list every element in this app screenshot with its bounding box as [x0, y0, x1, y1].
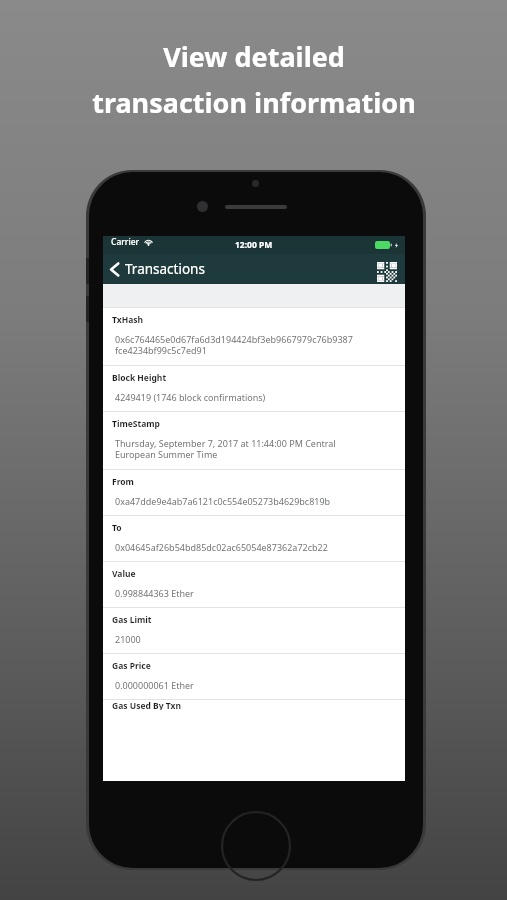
button[interactable]: Gas Price: [103, 653, 405, 699]
staticText: 0x6c764465e0d67fa6d3d194424bf3eb9667979c…: [115, 333, 353, 357]
staticText: Gas Price: [112, 660, 151, 672]
staticText: TxHash: [112, 314, 144, 326]
staticText: 0x04645af26b54bd85dc02ac65054e87362a72cb…: [115, 541, 328, 553]
staticText: Thursday, September 7, 2017 at 11:44:00 …: [115, 437, 336, 461]
staticText: Gas Used By Txn: [112, 700, 181, 710]
button[interactable]: Gas Limit: [103, 607, 405, 653]
staticText: Transactions: [125, 260, 205, 278]
staticText: 0.000000061 Ether: [115, 679, 194, 691]
staticText: Block Height: [112, 372, 167, 384]
button[interactable]: Value: [103, 561, 405, 607]
staticText: 0.998844363 Ether: [115, 587, 194, 599]
staticText: 12:00 PM: [235, 239, 273, 251]
staticText: 4249419 (1746 block confirmations): [115, 391, 266, 403]
staticText: Carrier: [111, 236, 140, 248]
button[interactable]: TimeStamp: [103, 411, 405, 469]
staticText: From: [112, 476, 134, 488]
staticText: transaction information: [92, 84, 416, 121]
button[interactable]: Transactions: [103, 256, 213, 282]
staticText: TimeStamp: [112, 418, 160, 430]
staticText: View detailed: [163, 38, 345, 75]
staticText: Gas Limit: [112, 614, 152, 626]
button[interactable]: Block Height: [103, 365, 405, 411]
staticText: 21000: [115, 633, 141, 645]
staticText: To: [112, 522, 122, 534]
button[interactable]: TxHash: [103, 307, 405, 365]
button[interactable]: Scan QR code: [369, 254, 405, 284]
button[interactable]: From: [103, 469, 405, 515]
button[interactable]: To: [103, 515, 405, 561]
staticText: Value: [112, 568, 136, 580]
staticText: 0xa47dde9e4ab7a6121c0c554e05273b4629bc81…: [115, 495, 331, 507]
